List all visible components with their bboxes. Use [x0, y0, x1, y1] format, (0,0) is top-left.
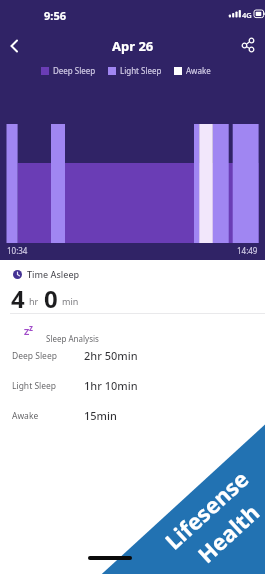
- button[interactable]: [235, 33, 265, 59]
- staticText: Deep Sleep: [53, 65, 96, 76]
- staticText: Health: [191, 497, 265, 569]
- button[interactable]: [0, 33, 30, 59]
- staticText: 10:34: [7, 245, 28, 256]
- button[interactable]: Awake: [0, 408, 265, 423]
- staticText: z: [29, 322, 33, 333]
- staticText: 4G: [242, 10, 252, 20]
- staticText: min: [62, 295, 79, 307]
- staticText: Apr 26: [112, 37, 154, 55]
- button[interactable]: Lifesense: [85, 410, 265, 574]
- staticText: Lifesense: [158, 463, 255, 555]
- staticText: hr: [29, 295, 39, 307]
- staticText: Deep Sleep: [12, 350, 84, 362]
- staticText: 15min: [84, 408, 117, 423]
- staticText: Light Sleep: [12, 380, 84, 392]
- staticText: Time Asleep: [27, 268, 80, 280]
- staticText: Awake: [186, 65, 211, 76]
- button[interactable]: Light Sleep: [0, 378, 265, 393]
- staticText: 2hr 50min: [84, 348, 138, 363]
- staticText: 1hr 10min: [84, 378, 138, 393]
- staticText: 9:56: [44, 8, 66, 23]
- staticText: Z: [24, 325, 30, 337]
- staticText: Sleep Analysis: [46, 333, 99, 344]
- button[interactable]: Deep Sleep: [0, 348, 265, 363]
- staticText: 4: [11, 282, 25, 310]
- staticText: Light Sleep: [120, 65, 162, 76]
- staticText: Awake: [12, 410, 84, 422]
- staticText: 0: [44, 282, 58, 310]
- staticText: 14:49: [237, 245, 258, 256]
- button[interactable]: Time Asleep: [13, 268, 80, 280]
